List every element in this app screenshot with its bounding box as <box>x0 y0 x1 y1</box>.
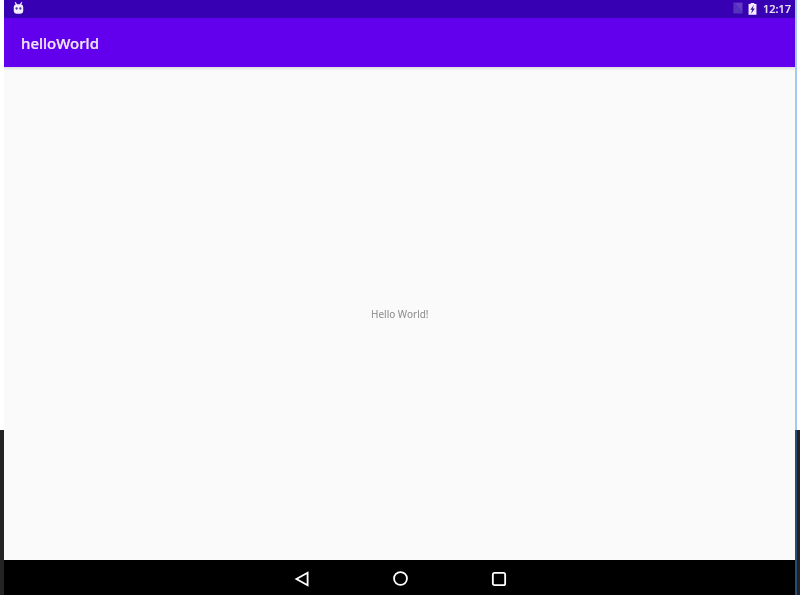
staticText: Hello World! <box>371 307 429 321</box>
staticText: 12:17 <box>763 1 792 16</box>
button[interactable]: Recent apps <box>482 561 516 595</box>
staticText: helloWorld <box>21 33 99 53</box>
button[interactable]: Back <box>284 561 318 595</box>
button[interactable]: Home <box>383 561 417 595</box>
